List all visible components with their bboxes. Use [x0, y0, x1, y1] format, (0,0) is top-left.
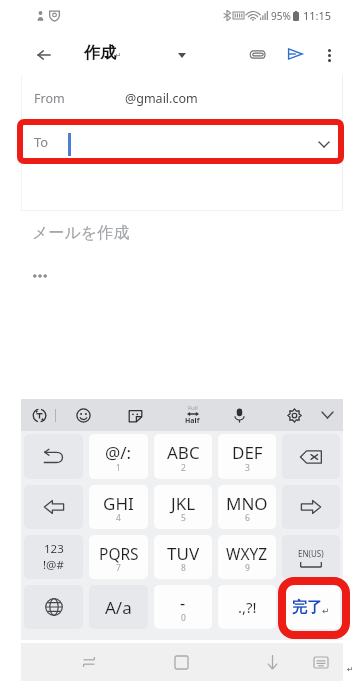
button[interactable]: Account dropdown: [165, 38, 199, 72]
button[interactable]: Stickers: [119, 399, 151, 431]
staticText: WXYZ: [226, 543, 268, 564]
staticText: Half: [185, 416, 200, 426]
staticText: 作成: [84, 43, 116, 63]
staticText: @/:: [105, 441, 132, 464]
staticText: ↵: [115, 51, 122, 60]
staticText: !@#: [43, 557, 64, 573]
staticText: -: [180, 592, 186, 614]
button[interactable]: WXYZ: [218, 535, 276, 579]
button[interactable]: PQRS: [89, 535, 148, 579]
button[interactable]: .,?!: [218, 585, 276, 629]
staticText: A/a: [105, 596, 132, 619]
button[interactable]: Attach file: [240, 37, 274, 71]
button[interactable]: A/a: [89, 585, 148, 629]
staticText: Full: [188, 404, 198, 412]
staticText: 5: [181, 512, 186, 524]
button[interactable]: Hide keyboard: [258, 648, 286, 676]
staticText: @gmail.com: [125, 90, 198, 107]
button[interactable]: Voice typing: [23, 399, 55, 431]
staticText: ABC: [167, 441, 200, 464]
button[interactable]: To: [21, 119, 343, 163]
staticText: GHI: [103, 492, 134, 515]
button[interactable]: EN(US): [282, 535, 340, 579]
staticText: 完了: [292, 598, 322, 617]
button[interactable]: Send: [278, 37, 312, 71]
staticText: EN(US): [298, 548, 324, 559]
staticText: JKL: [171, 492, 196, 515]
button[interactable]: [24, 585, 83, 629]
button[interactable]: [282, 434, 340, 479]
staticText: DEF: [232, 441, 263, 464]
button[interactable]: -: [154, 585, 212, 629]
button[interactable]: メールを作成: [21, 211, 343, 381]
button[interactable]: [24, 485, 83, 529]
button[interactable]: [282, 485, 340, 529]
staticText: 95%: [271, 9, 291, 23]
button[interactable]: @/:: [89, 434, 148, 479]
staticText: 8: [181, 562, 186, 574]
button[interactable]: Switch input method: [75, 648, 103, 676]
staticText: 2: [181, 462, 186, 474]
staticText: 0: [181, 612, 186, 624]
button[interactable]: Microphone: [223, 399, 255, 431]
staticText: 3: [245, 462, 250, 474]
button[interactable]: Expand recipients: [311, 131, 337, 157]
staticText: 9: [245, 562, 250, 574]
staticText: From: [34, 90, 65, 107]
staticText: .,?!: [238, 597, 257, 617]
staticText: メールを作成: [32, 223, 130, 243]
staticText: ↵: [347, 665, 354, 674]
button[interactable]: From: [21, 78, 343, 119]
button[interactable]: 完了: [282, 585, 340, 629]
button[interactable]: Collapse: [311, 399, 343, 431]
staticText: 123: [44, 541, 64, 557]
button[interactable]: TUV: [154, 535, 212, 579]
staticText: 4: [116, 512, 121, 524]
button[interactable]: Settings: [278, 399, 310, 431]
button[interactable]: [24, 434, 83, 479]
button[interactable]: Full width: [176, 399, 208, 431]
staticText: To: [34, 133, 49, 151]
button[interactable]: More options: [314, 40, 344, 70]
staticText: ↵: [322, 606, 330, 616]
button[interactable]: GHI: [89, 485, 148, 529]
button[interactable]: 123: [24, 535, 83, 579]
button[interactable]: Emoji: [67, 399, 99, 431]
button[interactable]: ABC: [154, 434, 212, 479]
staticText: 11:15: [303, 8, 332, 23]
staticText: TUV: [167, 542, 200, 565]
staticText: 1: [116, 462, 121, 474]
staticText: 6: [245, 512, 250, 524]
staticText: 7: [116, 562, 121, 574]
button[interactable]: Recents: [167, 648, 195, 676]
button[interactable]: DEF: [218, 434, 276, 479]
button[interactable]: Keyboard: [307, 648, 335, 676]
staticText: PQRS: [99, 543, 139, 564]
button[interactable]: MNO: [218, 485, 276, 529]
staticText: MNO: [226, 492, 268, 515]
button[interactable]: JKL: [154, 485, 212, 529]
button[interactable]: Back: [26, 37, 62, 73]
